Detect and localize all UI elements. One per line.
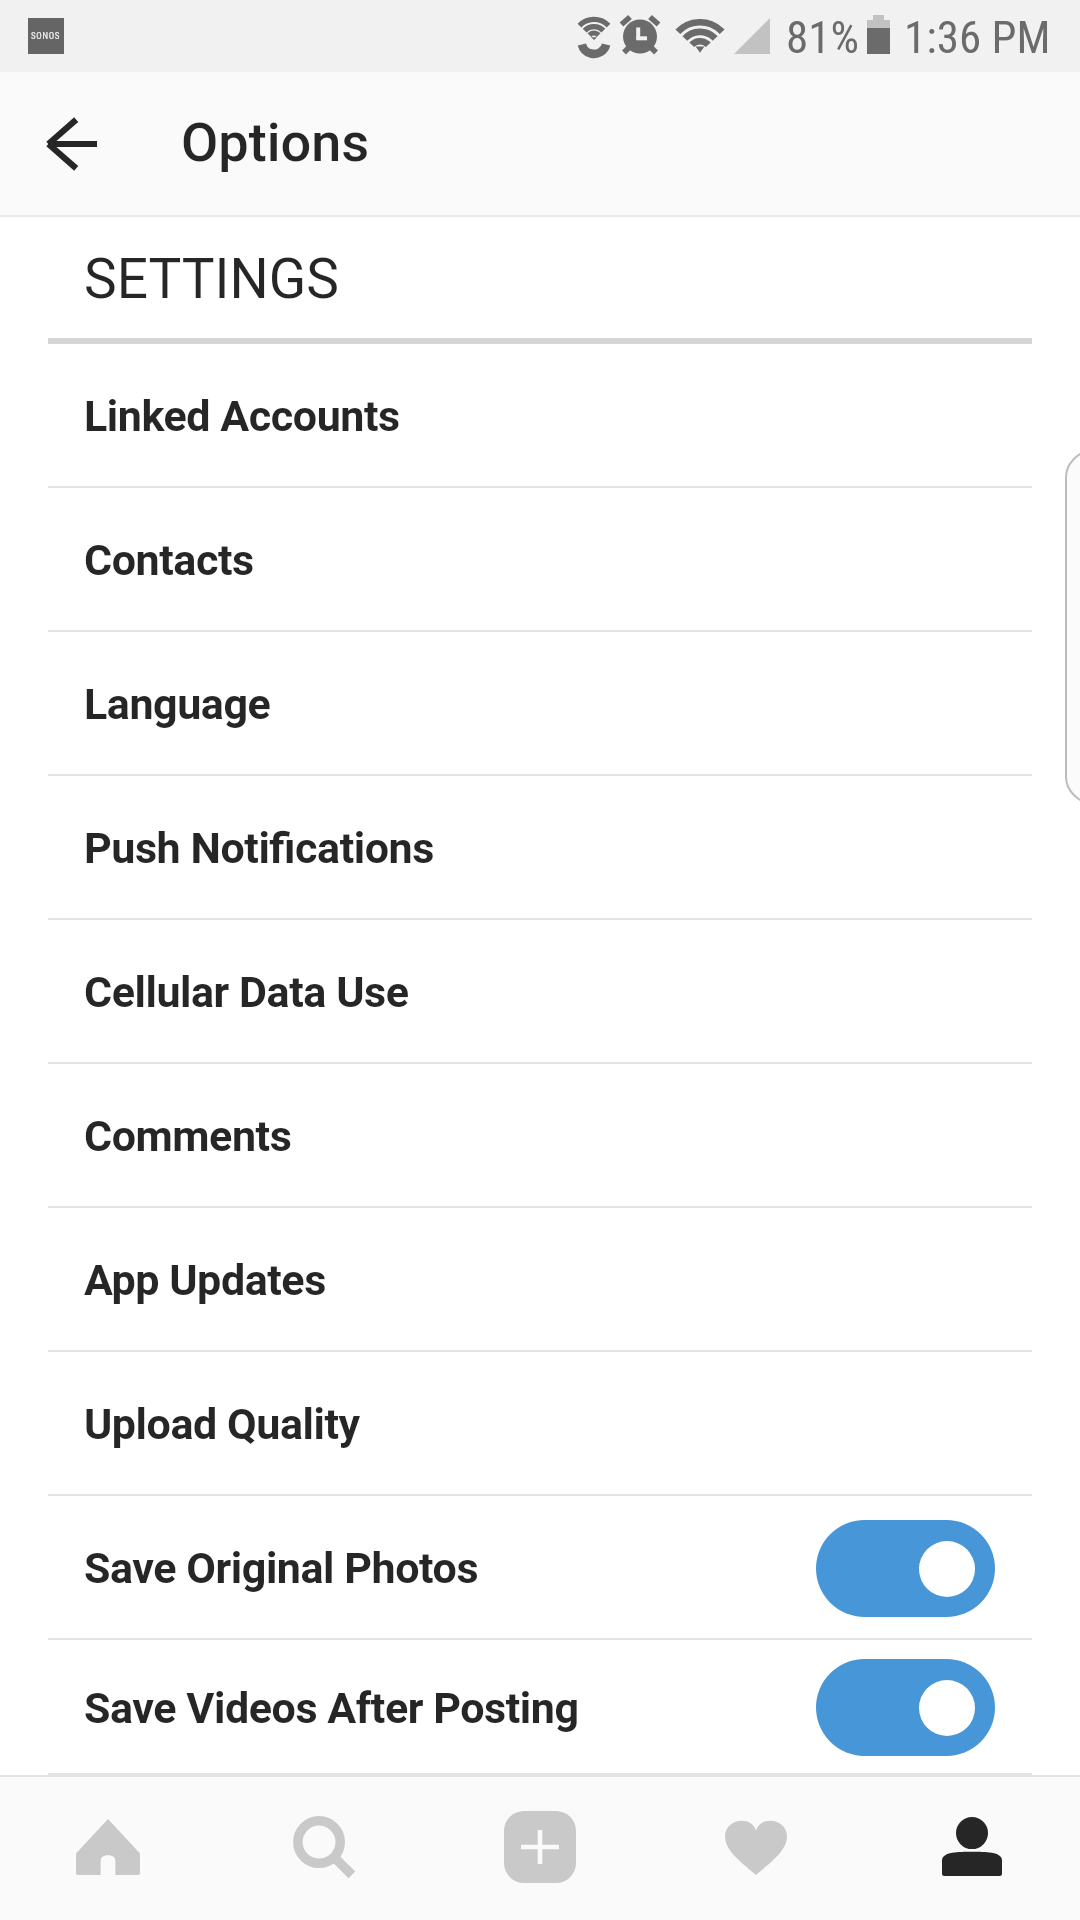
staticText: Options: [181, 111, 370, 174]
staticText: Language: [84, 679, 271, 729]
staticText: Comments: [84, 1111, 292, 1161]
button[interactable]: Profile: [864, 1777, 1080, 1920]
button[interactable]: Save Original Photos: [0, 1496, 1080, 1640]
button[interactable]: Save Videos After Posting: [0, 1640, 1080, 1775]
staticText: 1:36 PM: [904, 11, 1051, 64]
button[interactable]: Search: [216, 1777, 432, 1920]
staticText: Save Videos After Posting: [84, 1683, 579, 1733]
staticText: Cellular Data Use: [84, 967, 409, 1017]
staticText: SONOS: [31, 31, 61, 42]
button[interactable]: Cellular Data Use: [0, 920, 1080, 1064]
staticText: 81%: [786, 11, 859, 64]
button[interactable]: Language: [0, 632, 1080, 776]
staticText: Push Notifications: [84, 823, 434, 873]
button[interactable]: Activity: [648, 1777, 864, 1920]
button[interactable]: Push Notifications: [0, 776, 1080, 920]
button[interactable]: Home: [0, 1777, 216, 1920]
staticText: Linked Accounts: [84, 391, 400, 441]
button[interactable]: Linked Accounts: [0, 344, 1080, 488]
button[interactable]: App Updates: [0, 1208, 1080, 1352]
staticText: App Updates: [84, 1255, 326, 1305]
staticText: Contacts: [84, 535, 254, 585]
button[interactable]: Comments: [0, 1064, 1080, 1208]
button[interactable]: [816, 1659, 995, 1756]
button[interactable]: Upload Quality: [0, 1352, 1080, 1496]
staticText: Upload Quality: [84, 1399, 360, 1449]
button[interactable]: Back: [21, 93, 123, 195]
button[interactable]: [816, 1520, 995, 1617]
button[interactable]: Contacts: [0, 488, 1080, 632]
button[interactable]: New post: [432, 1777, 648, 1920]
staticText: SETTINGS: [84, 247, 339, 311]
staticText: Save Original Photos: [84, 1543, 479, 1593]
